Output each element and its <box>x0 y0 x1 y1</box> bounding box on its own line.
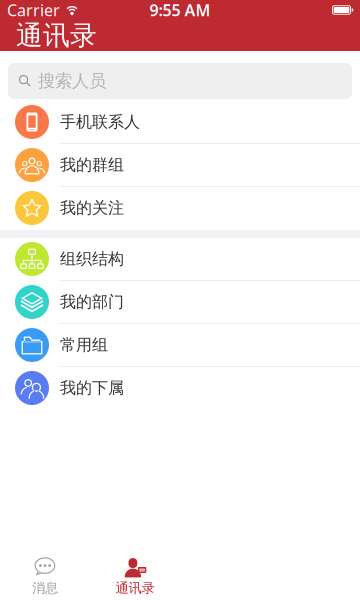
staticText: 常用组 <box>60 335 108 355</box>
staticText: Carrier <box>7 0 60 21</box>
button[interactable]: 消息 <box>0 552 90 600</box>
button[interactable]: 搜索人员 <box>8 63 352 99</box>
staticText: 搜索人员 <box>38 70 106 92</box>
staticText: 通讯录 <box>115 580 154 596</box>
button[interactable]: 手机联系人 <box>0 101 360 144</box>
staticText: 我的下属 <box>60 378 124 398</box>
button[interactable]: 通讯录 <box>90 552 180 600</box>
staticText: 手机联系人 <box>60 112 140 132</box>
staticText: 我的群组 <box>60 155 124 175</box>
staticText: 通讯录 <box>16 19 97 52</box>
button[interactable]: 我的下属 <box>0 367 360 410</box>
staticText: 组织结构 <box>60 249 124 269</box>
button[interactable]: 我的关注 <box>0 187 360 230</box>
staticText: 9:55 AM <box>149 0 210 21</box>
button[interactable]: 我的群组 <box>0 144 360 187</box>
button[interactable]: 组织结构 <box>0 238 360 281</box>
staticText: 消息 <box>32 580 58 596</box>
staticText: 我的关注 <box>60 198 124 218</box>
button[interactable]: 我的部门 <box>0 281 360 324</box>
button[interactable]: 常用组 <box>0 324 360 367</box>
staticText: 我的部门 <box>60 292 124 312</box>
